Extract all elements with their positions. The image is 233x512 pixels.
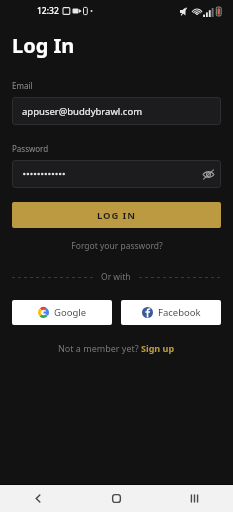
button[interactable]: Facebook	[121, 300, 221, 325]
button[interactable]: Recent apps	[155, 485, 233, 512]
button[interactable]: LOG IN	[12, 202, 221, 228]
button[interactable]: Home	[77, 485, 155, 512]
staticText: appuser@buddybrawl.com	[22, 105, 143, 118]
button[interactable]: Not a member yet?	[0, 342, 233, 354]
staticText: 12:32	[37, 5, 59, 17]
staticText: Or with	[101, 271, 131, 283]
button[interactable]: Google	[12, 300, 112, 325]
button[interactable]: appuser@buddybrawl.com	[12, 97, 221, 125]
staticText: LOG IN	[97, 209, 136, 222]
button[interactable]: Forgot your password?	[0, 240, 233, 252]
staticText: Log In	[12, 32, 75, 59]
button[interactable]: Hide password	[195, 161, 221, 187]
staticText: Sign up	[141, 342, 175, 354]
staticText: Password	[12, 143, 49, 154]
staticText: Google	[54, 306, 87, 319]
button[interactable]: Hide password	[12, 160, 221, 188]
button[interactable]: Back	[0, 485, 77, 512]
staticText: Facebook	[158, 306, 201, 319]
staticText: Email	[12, 80, 33, 91]
staticText: Not a member yet?	[58, 342, 141, 354]
staticText: Forgot your password?	[71, 240, 163, 252]
